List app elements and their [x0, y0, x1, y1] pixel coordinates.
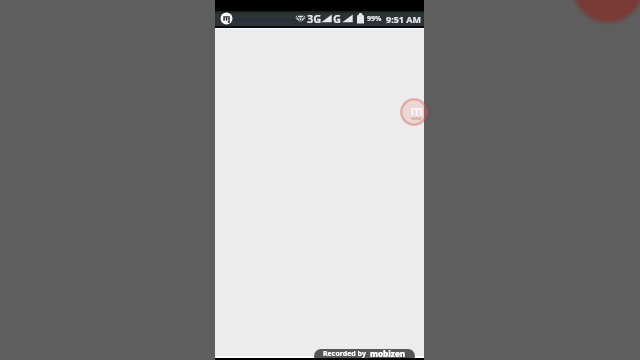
button[interactable]: Recorded by mobizen [314, 349, 415, 360]
staticText: 99% [367, 14, 382, 24]
button[interactable]: Mobizen notification [220, 12, 233, 25]
staticText: Recorded by [323, 349, 366, 359]
staticText: mobizen [370, 349, 406, 359]
staticText: 3G [307, 11, 322, 26]
staticText: 9:51 AM [386, 13, 422, 25]
staticText: G [333, 11, 341, 26]
